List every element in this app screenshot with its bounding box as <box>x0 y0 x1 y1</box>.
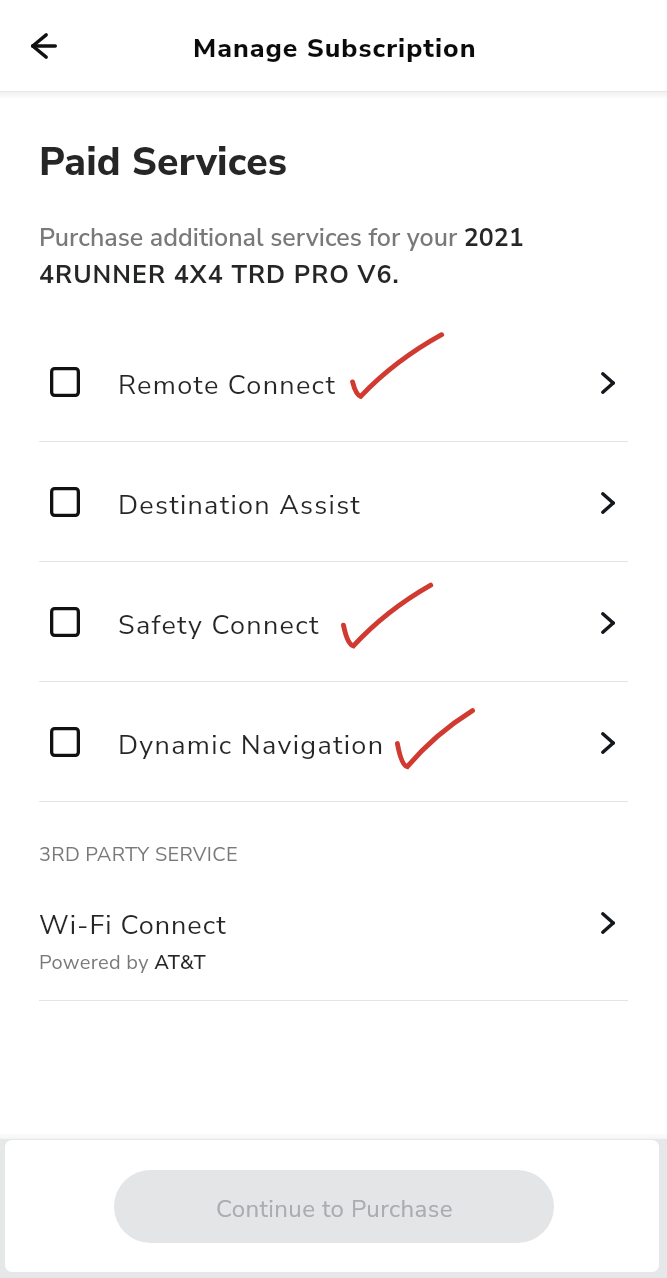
staticText: Safety Connect <box>118 607 601 644</box>
button[interactable]: Back <box>18 20 70 72</box>
staticText: Paid Services <box>39 136 288 189</box>
button[interactable]: Dynamic Navigation <box>0 682 667 801</box>
button[interactable]: Destination Assist <box>0 442 667 561</box>
button[interactable]: Wi-Fi Connect <box>0 907 667 976</box>
button[interactable]: Continue to Purchase <box>114 1170 554 1243</box>
staticText: 3RD PARTY SERVICE <box>39 841 238 868</box>
staticText: Wi-Fi Connect <box>39 907 227 944</box>
staticText: Dynamic Navigation <box>118 727 601 764</box>
button[interactable]: Remote Connect <box>0 322 667 441</box>
staticText: Continue to Purchase <box>216 1193 453 1226</box>
button[interactable]: Safety Connect <box>0 562 667 681</box>
staticText: 4RUNNER 4X4 TRD PRO V6. <box>39 258 400 292</box>
staticText: Purchase additional services for your 20… <box>39 221 524 255</box>
staticText: Manage Subscription <box>193 30 477 66</box>
staticText: Remote Connect <box>118 367 601 404</box>
staticText: Powered by AT&T <box>39 949 207 976</box>
staticText: Destination Assist <box>118 487 601 524</box>
